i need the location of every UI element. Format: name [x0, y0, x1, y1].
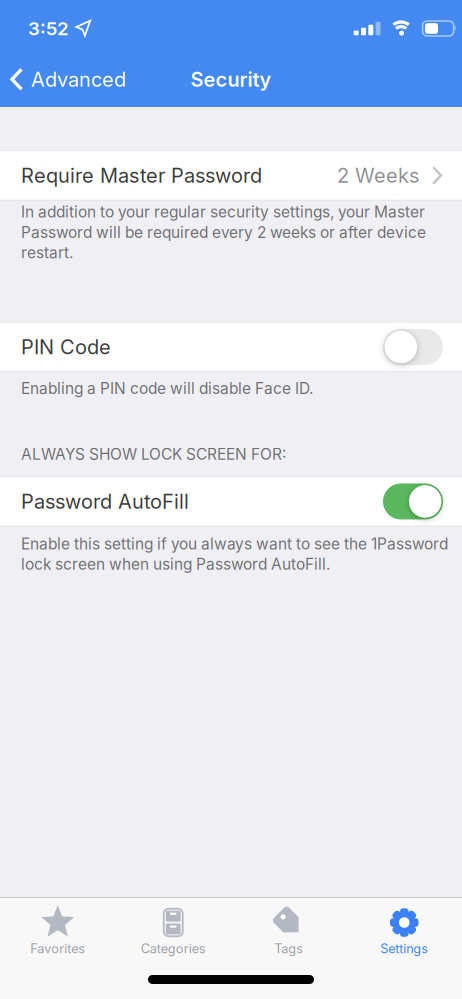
button[interactable]: Categories [115, 903, 231, 961]
button[interactable]: PIN Code [0, 322, 462, 372]
staticText: 2 Weeks [337, 164, 419, 187]
staticText: Tags [274, 941, 303, 956]
button[interactable]: Back [10, 67, 126, 91]
staticText: Favorites [30, 941, 85, 956]
button[interactable]: Settings [346, 903, 462, 961]
button[interactable]: Favorites [0, 903, 115, 961]
staticText: Require Master Password [21, 164, 262, 187]
staticText: In addition to your regular security set… [21, 202, 426, 262]
staticText: 3:52 [28, 17, 69, 39]
button[interactable]: Password AutoFill [0, 476, 462, 526]
staticText: Enabling a PIN code will disable Face ID… [21, 379, 313, 398]
staticText: ALWAYS SHOW LOCK SCREEN FOR: [21, 445, 286, 463]
staticText: Password AutoFill [21, 490, 189, 513]
staticText: Enable this setting if you always want t… [21, 534, 448, 574]
staticText: PIN Code [21, 335, 111, 359]
staticText: Settings [380, 941, 428, 956]
staticText: Security [190, 68, 271, 91]
staticText: Advanced [31, 68, 126, 91]
button[interactable]: Tags [231, 903, 346, 961]
staticText: Categories [141, 941, 206, 956]
button[interactable]: Require Master Password [0, 150, 462, 200]
